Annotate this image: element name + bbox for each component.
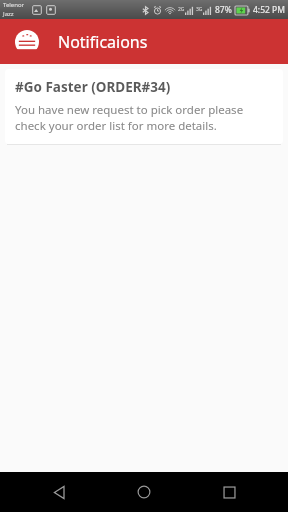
button[interactable]: Back: [33, 472, 85, 512]
staticText: You have new request to pick order pleas…: [15, 102, 273, 133]
button[interactable]: Home: [118, 472, 170, 512]
staticText: Jazz: [3, 10, 14, 18]
staticText: Telenor: [3, 1, 25, 9]
staticText: 3G: [196, 6, 203, 13]
button[interactable]: #Go Faster (ORDER#34): [5, 69, 283, 144]
button[interactable]: Recent apps: [203, 472, 255, 512]
staticText: 4:52 PM: [253, 4, 285, 16]
staticText: #Go Faster (ORDER#34): [15, 78, 171, 96]
staticText: 2G: [178, 6, 185, 13]
button[interactable]: Open menu: [14, 29, 40, 55]
staticText: Notificaions: [58, 31, 148, 53]
staticText: 87%: [215, 4, 232, 16]
